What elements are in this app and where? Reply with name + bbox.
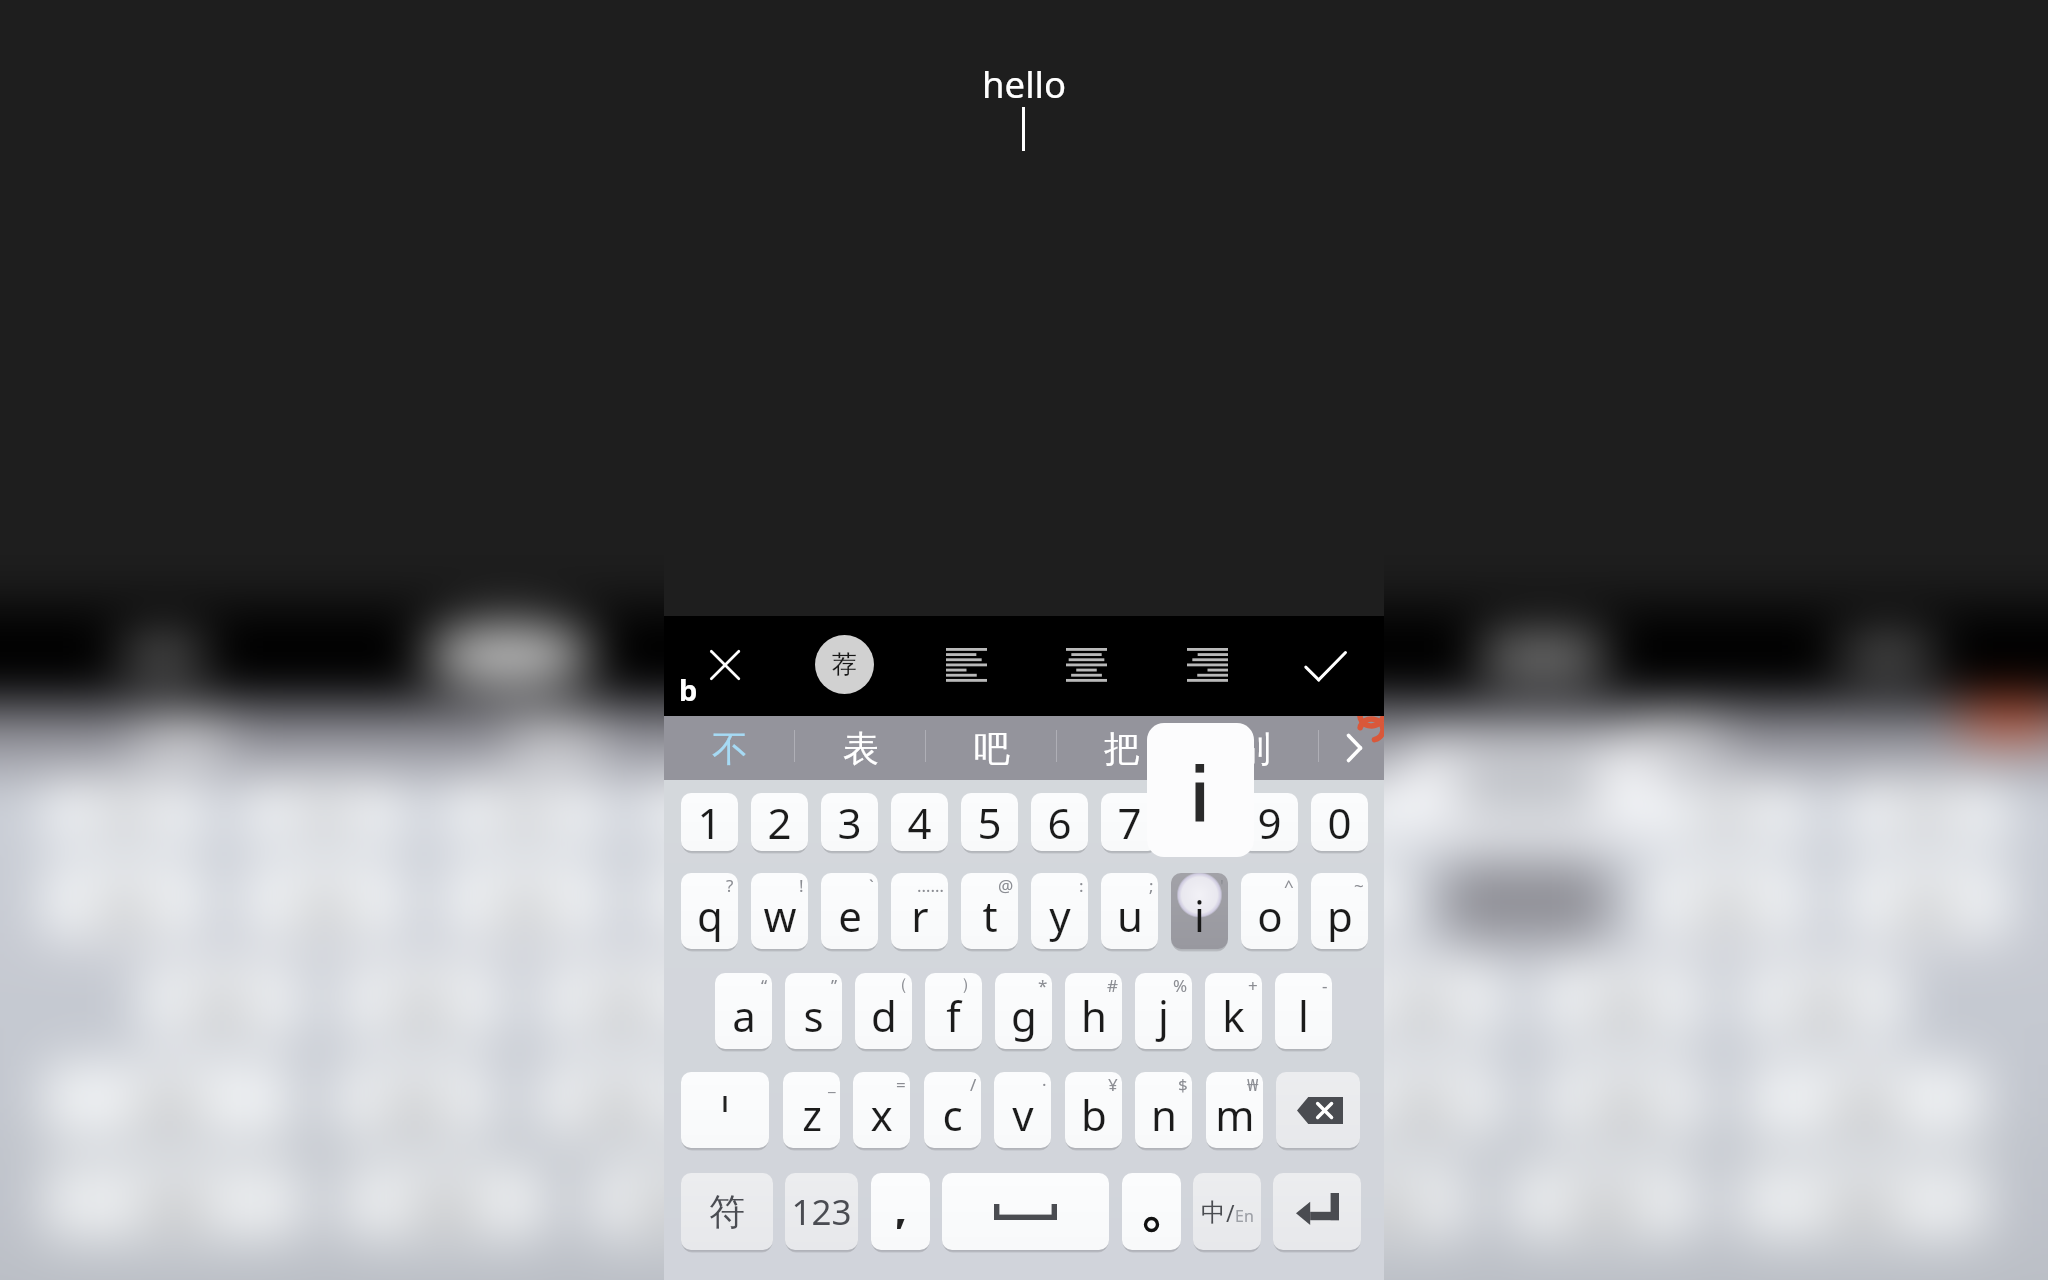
staticText: s: [803, 987, 824, 1044]
staticText: 表: [843, 726, 879, 771]
button[interactable]: Apostrophe: [681, 1072, 769, 1148]
button[interactable]: More candidates: [1333, 716, 1375, 780]
button[interactable]: Text field: [664, 0, 1384, 616]
staticText: r: [911, 887, 929, 944]
button[interactable]: Recommended phrases: [815, 635, 874, 694]
staticText: 123: [791, 1188, 852, 1236]
button[interactable]: 6: [1031, 793, 1088, 851]
button[interactable]: 123: [785, 1173, 858, 1250]
button[interactable]: Align center: [1056, 635, 1116, 695]
button[interactable]: 1: [681, 793, 738, 851]
staticText: :: [1079, 874, 1084, 897]
staticText: q: [697, 887, 723, 944]
button[interactable]: $: [1135, 1072, 1192, 1148]
button[interactable]: Close: [695, 635, 755, 695]
staticText: 0: [1327, 794, 1352, 851]
button[interactable]: 别: [1187, 716, 1318, 780]
button[interactable]: Enter: [1273, 1173, 1361, 1250]
staticText: 1: [697, 794, 722, 851]
button[interactable]: 0: [1311, 793, 1368, 851]
button[interactable]: ¥: [1065, 1072, 1122, 1148]
button[interactable]: （: [855, 973, 912, 1049]
staticText: ?: [726, 874, 734, 897]
staticText: #: [1107, 974, 1118, 997]
staticText: ₩: [1247, 1073, 1259, 1096]
button[interactable]: 把: [1056, 716, 1187, 780]
staticText: 别: [1235, 726, 1271, 771]
button[interactable]: ·: [994, 1072, 1051, 1148]
staticText: ;: [1149, 874, 1154, 897]
staticText: ¥: [1108, 1073, 1118, 1096]
button[interactable]: ……: [891, 873, 948, 949]
button[interactable]: -: [1275, 973, 1332, 1049]
staticText: e: [838, 887, 862, 944]
staticText: b: [1081, 1086, 1107, 1143]
button[interactable]: *: [995, 973, 1052, 1049]
button[interactable]: 9: [1241, 793, 1298, 851]
staticText: 不: [712, 726, 748, 771]
button[interactable]: ~: [1311, 873, 1368, 949]
button[interactable]: ）: [925, 973, 982, 1049]
button[interactable]: 7: [1101, 793, 1158, 851]
staticText: /: [970, 1073, 977, 1096]
staticText: %: [1173, 974, 1188, 997]
button[interactable]: Done: [1297, 635, 1357, 695]
staticText: ……: [917, 874, 944, 897]
button[interactable]: !: [751, 873, 808, 949]
staticText: +: [1248, 974, 1258, 997]
button[interactable]: #: [1065, 973, 1122, 1049]
button[interactable]: 5: [961, 793, 1018, 851]
button[interactable]: +: [1205, 973, 1262, 1049]
button[interactable]: 吧: [926, 716, 1057, 780]
button[interactable]: 不: [664, 716, 795, 780]
staticText: 5: [977, 794, 1002, 851]
button[interactable]: _: [783, 1072, 840, 1148]
button[interactable]: Full stop: [1122, 1173, 1181, 1250]
button[interactable]: @: [961, 873, 1018, 949]
staticText: d: [871, 987, 897, 1044]
button[interactable]: ^: [1241, 873, 1298, 949]
button[interactable]: Switch Chinese English: [1193, 1173, 1261, 1250]
staticText: f: [946, 987, 961, 1044]
button[interactable]: 表: [795, 716, 926, 780]
staticText: m: [1215, 1086, 1255, 1143]
button[interactable]: Space: [942, 1173, 1109, 1250]
button[interactable]: 8: [1171, 793, 1228, 851]
staticText: 吧: [974, 726, 1010, 771]
button[interactable]: Align right: [1177, 635, 1237, 695]
staticText: （: [891, 974, 908, 995]
button[interactable]: ;: [1101, 873, 1158, 949]
button[interactable]: 3: [821, 793, 878, 851]
staticText: u: [1117, 887, 1143, 944]
button[interactable]: %: [1135, 973, 1192, 1049]
button[interactable]: 2: [751, 793, 808, 851]
staticText: ”: [831, 974, 838, 997]
staticText: 6: [1047, 794, 1072, 851]
button[interactable]: Backspace: [1276, 1072, 1360, 1148]
button[interactable]: ?: [681, 873, 738, 949]
staticText: 7: [1117, 794, 1142, 851]
button[interactable]: ₩: [1206, 1072, 1263, 1148]
staticText: p: [1327, 887, 1353, 944]
button[interactable]: ': [1171, 873, 1228, 949]
button[interactable]: `: [821, 873, 878, 949]
button[interactable]: =: [853, 1072, 910, 1148]
staticText: a: [732, 987, 756, 1044]
button[interactable]: ”: [785, 973, 842, 1049]
staticText: l: [1298, 987, 1309, 1044]
button[interactable]: :: [1031, 873, 1088, 949]
staticText: o: [1257, 887, 1283, 944]
staticText: ': [1220, 874, 1224, 897]
staticText: 8: [1187, 794, 1212, 851]
button[interactable]: /: [924, 1072, 981, 1148]
button[interactable]: “: [715, 973, 772, 1049]
staticText: ^: [1284, 874, 1294, 897]
button[interactable]: Comma: [871, 1173, 930, 1250]
button[interactable]: 4: [891, 793, 948, 851]
staticText: 9: [1257, 794, 1282, 851]
button[interactable]: 符: [681, 1173, 773, 1250]
staticText: _: [828, 1073, 836, 1096]
button[interactable]: Align left: [936, 635, 996, 695]
staticText: v: [1012, 1086, 1034, 1143]
staticText: !: [799, 874, 804, 897]
